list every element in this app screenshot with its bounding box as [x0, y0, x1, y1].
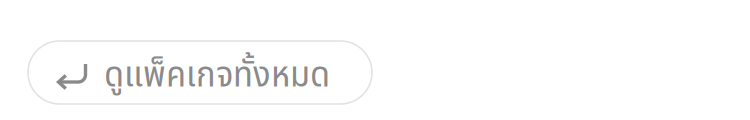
button[interactable]: ดูแพ็คเกจทั้งหมด — [28, 41, 372, 104]
staticText: ดูแพ็คเกจทั้งหมด — [104, 48, 330, 103]
